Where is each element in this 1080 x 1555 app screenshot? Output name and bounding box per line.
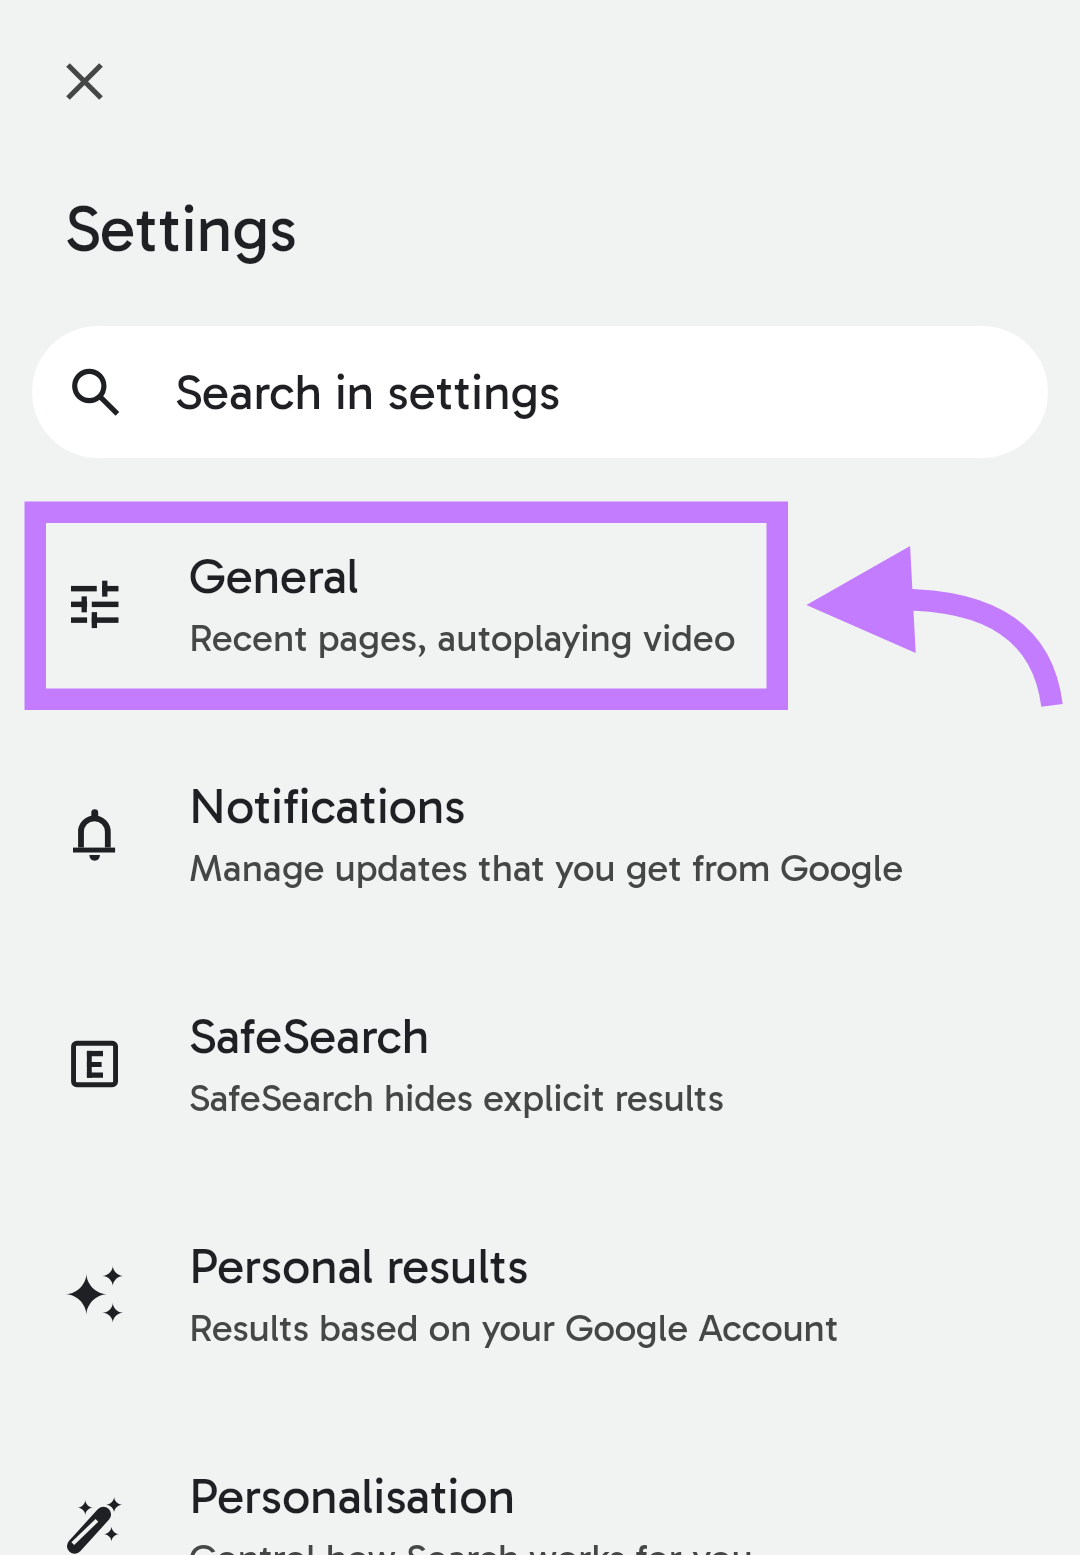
button[interactable]: Notifications [0, 695, 1080, 925]
button[interactable]: Personalisation [0, 1385, 1080, 1555]
staticText: Search in settings [175, 362, 561, 422]
button[interactable]: SafeSearch [0, 925, 1080, 1155]
staticText: Personalisation [189, 1466, 515, 1526]
staticText: Results based on your Google Account [189, 1305, 839, 1351]
staticText: Personal results [189, 1236, 529, 1296]
button[interactable]: Close [30, 27, 138, 135]
staticText: Notifications [189, 776, 466, 836]
staticText: Control how Search works for you [189, 1535, 753, 1555]
button[interactable]: Personal results [0, 1155, 1080, 1385]
staticText: Settings [65, 190, 298, 268]
button[interactable]: General [0, 465, 1080, 695]
staticText: General [189, 546, 359, 606]
staticText: SafeSearch [189, 1006, 430, 1066]
staticText: Manage updates that you get from Google [189, 845, 904, 891]
button[interactable]: Search in settings [32, 326, 1048, 458]
staticText: SafeSearch hides explicit results [189, 1075, 725, 1121]
staticText: Recent pages, autoplaying video [189, 615, 736, 661]
